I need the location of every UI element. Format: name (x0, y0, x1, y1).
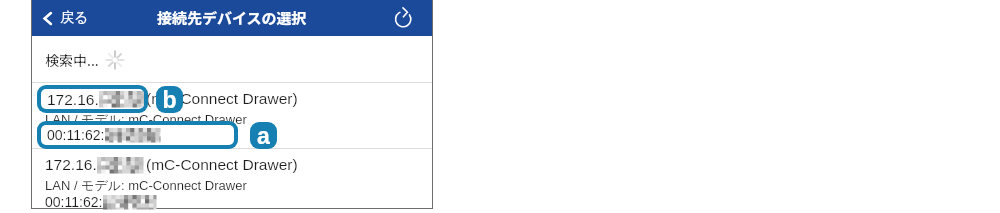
button[interactable]: 172.16. (32, 152, 432, 213)
button[interactable]: Refresh (391, 5, 417, 31)
staticText: (mC-Connect Drawer) (146, 90, 298, 107)
staticText: 00:11:62: (45, 194, 103, 210)
staticText: 検索中... (45, 50, 99, 70)
staticText: 接続先デバイスの選択 (157, 7, 307, 29)
staticText: 172.16. (45, 156, 97, 173)
staticText: LAN / モデル: mC-Connect Drawer (45, 111, 247, 127)
staticText: 00:11:62: (45, 128, 103, 144)
staticText: b (162, 87, 177, 113)
staticText: LAN / モデル: mC-Connect Drawer (45, 177, 247, 193)
staticText: (mC-Connect Drawer) (146, 156, 298, 173)
staticText: 172.16. (45, 90, 97, 107)
staticText: 戻る (60, 9, 89, 27)
button[interactable]: 172.16. (32, 86, 432, 148)
staticText: 00:11:62: (47, 127, 105, 143)
button[interactable]: 戻る (32, 5, 97, 31)
staticText: a (257, 123, 270, 149)
staticText: 172.16. (47, 91, 99, 108)
